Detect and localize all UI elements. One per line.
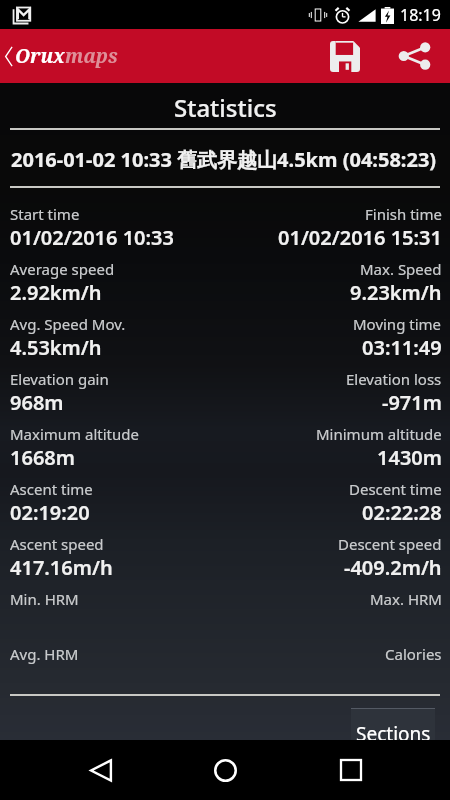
staticText: Ascent time bbox=[10, 479, 93, 499]
staticText: Statistics bbox=[174, 91, 277, 124]
staticText: Elevation loss bbox=[346, 369, 442, 389]
staticText: Min. HRM bbox=[10, 589, 79, 609]
button[interactable]: Back bbox=[71, 740, 131, 800]
button[interactable]: Start time bbox=[0, 188, 450, 243]
staticText: Maximum altitude bbox=[10, 424, 139, 444]
button[interactable]: Ascent speed bbox=[0, 518, 450, 573]
staticText: -409.2m/h bbox=[344, 554, 442, 581]
staticText: 01/02/2016 15:31 bbox=[278, 224, 442, 251]
button[interactable]: Min. HRM bbox=[0, 573, 450, 628]
button[interactable]: Elevation gain bbox=[0, 353, 450, 408]
staticText: 02:19:20 bbox=[10, 499, 90, 526]
staticText: 2.92km/h bbox=[10, 279, 102, 306]
staticText: 03:11:49 bbox=[362, 334, 442, 361]
staticText: Average speed bbox=[10, 259, 115, 279]
button[interactable]: Sections bbox=[351, 708, 435, 753]
button[interactable]: Home bbox=[195, 740, 255, 800]
staticText: 9.23km/h bbox=[350, 279, 442, 306]
staticText: Max. HRM bbox=[370, 589, 442, 609]
button[interactable]: Recent apps bbox=[321, 740, 381, 800]
staticText: Finish time bbox=[365, 204, 442, 224]
staticText: 1668m bbox=[10, 444, 75, 471]
staticText: Ascent speed bbox=[10, 534, 104, 554]
staticText: 4.53km/h bbox=[10, 334, 102, 361]
staticText: 18:19 bbox=[400, 4, 441, 26]
button[interactable]: 2016-01-02 10:33 舊武界越山4.5km (04:58:23) bbox=[0, 130, 450, 186]
staticText: Sections bbox=[356, 721, 431, 747]
button[interactable]: Ascent time bbox=[0, 463, 450, 518]
staticText: maps bbox=[65, 43, 118, 69]
staticText: Descent speed bbox=[338, 534, 442, 554]
staticText: 1430m bbox=[377, 444, 442, 471]
staticText: -971m bbox=[382, 389, 442, 416]
staticText: 02:22:28 bbox=[362, 499, 442, 526]
staticText: Avg. Speed Mov. bbox=[10, 314, 126, 334]
button[interactable]: Save bbox=[319, 30, 371, 82]
staticText: Orux bbox=[15, 43, 65, 69]
staticText: Avg. HRM bbox=[10, 644, 79, 664]
staticText: 968m bbox=[10, 389, 64, 416]
staticText: 2016-01-02 10:33 舊武界越山4.5km (04:58:23) bbox=[11, 146, 437, 173]
staticText: Minimum altitude bbox=[316, 424, 442, 444]
button[interactable]: Avg. Speed Mov. bbox=[0, 298, 450, 353]
staticText: 417.16m/h bbox=[10, 554, 113, 581]
staticText: Moving time bbox=[353, 314, 442, 334]
staticText: Descent time bbox=[349, 479, 442, 499]
staticText: Start time bbox=[10, 204, 80, 224]
button[interactable]: Avg. HRM bbox=[0, 628, 450, 683]
button[interactable]: Maximum altitude bbox=[0, 408, 450, 463]
staticText: 01/02/2016 10:33 bbox=[10, 224, 174, 251]
button[interactable]: Average speed bbox=[0, 243, 450, 298]
button[interactable]: Navigate up, OruxMaps bbox=[4, 43, 118, 69]
staticText: Max. Speed bbox=[360, 259, 442, 279]
staticText: Calories bbox=[385, 644, 442, 664]
staticText: Elevation gain bbox=[10, 369, 109, 389]
button[interactable]: Share bbox=[388, 30, 440, 82]
